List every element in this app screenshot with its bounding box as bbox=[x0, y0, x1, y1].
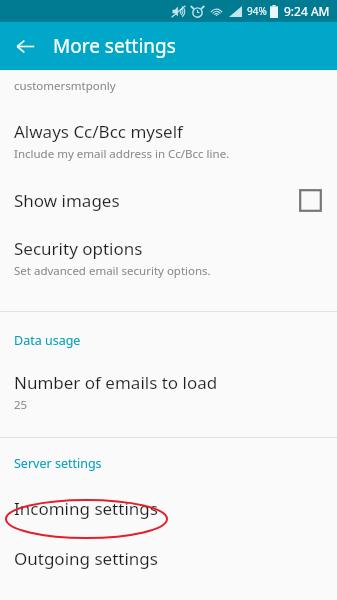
staticText: 25 bbox=[14, 397, 28, 413]
button[interactable]: Security options bbox=[0, 212, 337, 279]
button[interactable]: Show images bbox=[0, 162, 337, 212]
staticText: More settings bbox=[53, 33, 176, 59]
staticText: Always Cc/Bcc myself bbox=[14, 120, 183, 143]
staticText: Include my email address in Cc/Bcc line. bbox=[14, 146, 230, 162]
staticText: Server settings bbox=[14, 455, 337, 472]
staticText: 94% bbox=[247, 4, 267, 18]
staticText: Data usage bbox=[14, 332, 337, 349]
button[interactable]: Outgoing settings bbox=[0, 520, 337, 570]
staticText: customersmtponly bbox=[14, 78, 116, 94]
staticText: Set advanced email security options. bbox=[14, 263, 211, 279]
staticText: Incoming settings bbox=[14, 497, 158, 520]
staticText: Security options bbox=[14, 237, 143, 260]
button[interactable]: Incoming settings bbox=[0, 472, 337, 520]
button[interactable]: Show images checkbox bbox=[299, 189, 322, 212]
button[interactable]: Always Cc/Bcc myself bbox=[0, 94, 337, 162]
button[interactable]: Navigate up bbox=[8, 29, 42, 63]
button[interactable]: Number of emails to load bbox=[0, 349, 337, 413]
staticText: Number of emails to load bbox=[14, 371, 218, 394]
staticText: Show images bbox=[14, 189, 120, 212]
staticText: Outgoing settings bbox=[14, 547, 158, 570]
staticText: 9:24 AM bbox=[284, 3, 330, 19]
